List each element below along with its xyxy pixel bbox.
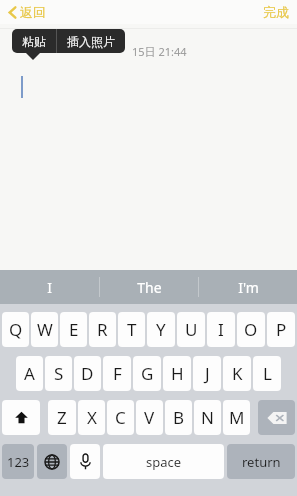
staticText: 插入照片 (67, 34, 115, 49)
staticText: R (97, 318, 108, 341)
staticText: P (276, 318, 287, 341)
button[interactable]: Q (2, 312, 29, 347)
staticText: Y (156, 318, 166, 341)
button[interactable]: 123 (2, 444, 34, 479)
staticText: The (137, 278, 162, 297)
button[interactable]: Z (48, 400, 76, 435)
staticText: A (24, 362, 35, 385)
button[interactable]: T (118, 312, 145, 347)
button[interactable]: N (194, 400, 221, 435)
staticText: U (185, 318, 198, 341)
staticText: C (115, 406, 126, 429)
button[interactable]: I'm (199, 270, 297, 304)
button[interactable]: U (177, 312, 205, 347)
button[interactable]: 插入照片 (57, 29, 125, 53)
staticText: 123 (7, 453, 30, 471)
button[interactable]: V (136, 400, 163, 435)
button[interactable]: M (223, 400, 250, 435)
button[interactable]: 完成 (261, 2, 291, 22)
staticText: 返回 (20, 4, 46, 20)
button[interactable]: space (103, 444, 224, 479)
button[interactable]: Y (147, 312, 175, 347)
button[interactable]: Voice input (70, 444, 100, 479)
staticText: T (127, 318, 137, 341)
staticText: D (81, 362, 94, 385)
button[interactable]: I (207, 312, 235, 347)
button[interactable]: 粘贴 (12, 29, 56, 53)
button[interactable]: B (165, 400, 192, 435)
staticText: space (146, 453, 182, 471)
staticText: Q (9, 318, 23, 341)
button[interactable]: 返回 (6, 2, 48, 22)
staticText: L (263, 362, 272, 385)
staticText: 完成 (263, 4, 289, 20)
staticText: E (69, 318, 79, 341)
button[interactable]: E (60, 312, 87, 347)
staticText: M (229, 406, 245, 429)
staticText: 粘贴 (22, 34, 46, 49)
button[interactable]: W (31, 312, 58, 347)
button[interactable]: X (78, 400, 105, 435)
staticText: O (244, 318, 258, 341)
button[interactable]: S (45, 356, 72, 391)
button[interactable]: J (193, 356, 221, 391)
staticText: Z (57, 406, 67, 429)
button[interactable]: C (107, 400, 134, 435)
staticText: X (87, 406, 97, 429)
staticText: I (47, 278, 52, 297)
button[interactable]: Backspace (258, 400, 295, 435)
staticText: 15日 21:44 (132, 44, 187, 59)
button[interactable]: The (100, 270, 198, 304)
button[interactable]: return (227, 444, 295, 479)
staticText: B (173, 406, 185, 429)
button[interactable]: I (0, 270, 99, 304)
button[interactable]: Change keyboard language (37, 444, 67, 479)
staticText: H (171, 362, 184, 385)
staticText: K (232, 362, 243, 385)
button[interactable]: O (237, 312, 265, 347)
button[interactable]: H (163, 356, 191, 391)
button[interactable]: G (133, 356, 161, 391)
button[interactable]: Shift (2, 400, 40, 435)
button[interactable]: D (74, 356, 101, 391)
staticText: W (37, 318, 53, 341)
staticText: I'm (238, 278, 259, 297)
button[interactable]: R (89, 312, 116, 347)
staticText: I (218, 318, 224, 341)
staticText: return (242, 453, 281, 471)
staticText: N (201, 406, 214, 429)
button[interactable]: A (16, 356, 43, 391)
button[interactable]: F (103, 356, 131, 391)
button[interactable]: L (253, 356, 281, 391)
staticText: V (144, 406, 155, 429)
button[interactable]: P (267, 312, 295, 347)
button[interactable]: K (223, 356, 251, 391)
staticText: S (54, 362, 64, 385)
staticText: J (205, 362, 210, 385)
staticText: F (113, 362, 122, 385)
staticText: G (141, 362, 154, 385)
